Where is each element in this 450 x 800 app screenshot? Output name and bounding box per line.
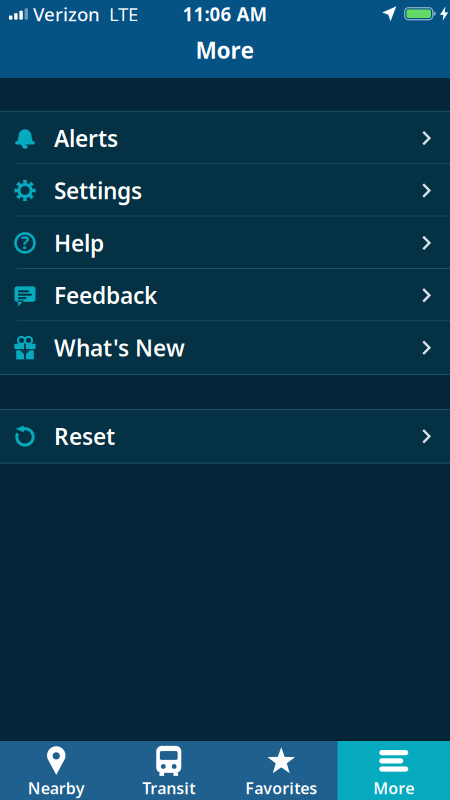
staticText: 11:06 AM xyxy=(182,2,267,26)
staticText: LTE xyxy=(109,2,138,26)
button[interactable]: More xyxy=(337,741,450,800)
staticText: Settings xyxy=(54,175,142,205)
button[interactable]: Reset xyxy=(0,410,450,462)
button[interactable]: Feedback xyxy=(0,269,450,321)
button[interactable]: Alerts xyxy=(0,112,450,164)
staticText: Alerts xyxy=(54,123,118,153)
staticText: More xyxy=(373,777,414,799)
button[interactable]: What's New xyxy=(0,321,450,374)
staticText: ? xyxy=(21,231,29,254)
staticText: More xyxy=(195,35,254,65)
button[interactable]: Nearby xyxy=(0,741,112,800)
staticText: Favorites xyxy=(245,777,317,799)
button[interactable]: Settings xyxy=(0,164,450,217)
staticText: Help xyxy=(54,228,104,258)
staticText: Feedback xyxy=(54,280,157,310)
staticText: Nearby xyxy=(28,777,85,799)
button[interactable]: ? xyxy=(0,217,450,269)
staticText: Verizon xyxy=(33,2,100,26)
button[interactable]: Favorites xyxy=(225,741,337,800)
staticText: Transit xyxy=(142,777,195,799)
staticText: What's New xyxy=(54,333,185,363)
staticText: Reset xyxy=(54,421,115,451)
button[interactable]: Transit xyxy=(112,741,225,800)
